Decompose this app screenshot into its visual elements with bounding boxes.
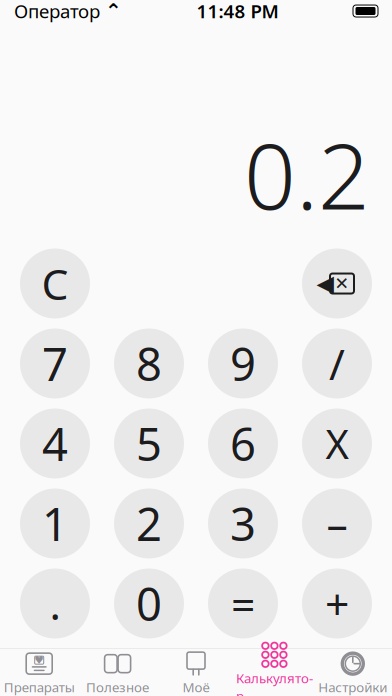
staticText: 0.2 (244, 114, 370, 234)
staticText: 1 (42, 493, 68, 554)
staticText: 0 (136, 573, 162, 634)
button[interactable]: 2 (114, 488, 184, 558)
staticText: 4 (42, 413, 68, 474)
staticText: 6 (230, 413, 256, 474)
button[interactable]: 1 (20, 488, 90, 558)
button[interactable]: = (208, 568, 278, 638)
staticText: Настройки (318, 678, 387, 696)
button[interactable]: ♥ (0, 646, 78, 696)
staticText: ✕ (334, 274, 349, 293)
staticText: X (325, 417, 348, 470)
button[interactable]: X (302, 408, 372, 478)
button[interactable]: – (302, 488, 372, 558)
staticText: 3 (230, 493, 256, 554)
button[interactable]: Настройки (314, 646, 392, 696)
staticText: = (231, 575, 255, 632)
button[interactable]: . (20, 568, 90, 638)
button[interactable]: 9 (208, 328, 278, 398)
staticText: . (49, 575, 60, 632)
button[interactable]: Калькулятор (235, 637, 314, 696)
button[interactable]: Полезное (78, 646, 157, 696)
button[interactable]: / (302, 328, 372, 398)
button[interactable]: 5 (114, 408, 184, 478)
staticText: 5 (136, 413, 162, 474)
staticText: C (41, 255, 68, 312)
button[interactable]: Моё (157, 646, 235, 696)
staticText: 7 (42, 333, 68, 394)
button[interactable]: 4 (20, 408, 90, 478)
staticText: Препараты (4, 678, 75, 696)
staticText: 2 (136, 493, 162, 554)
staticText: Калькулятор (236, 669, 313, 696)
button[interactable]: C (20, 248, 90, 318)
button[interactable]: + (302, 568, 372, 638)
staticText: ⌃ (105, 0, 122, 22)
staticText: – (326, 495, 347, 552)
button[interactable]: 3 (208, 488, 278, 558)
button[interactable]: 7 (20, 328, 90, 398)
staticText: 11:48 PM (196, 0, 278, 23)
staticText: ♥ (34, 654, 44, 666)
staticText: ◀ (316, 271, 333, 296)
button[interactable]: Delete (302, 248, 372, 318)
button[interactable]: 8 (114, 328, 184, 398)
staticText: + (325, 575, 349, 632)
staticText: Полезное (86, 678, 149, 696)
staticText: Оператор (14, 0, 100, 23)
staticText: / (329, 335, 345, 392)
staticText: Моё (182, 678, 209, 696)
button[interactable]: 6 (208, 408, 278, 478)
staticText: 9 (230, 333, 256, 394)
button[interactable]: 0 (114, 568, 184, 638)
staticText: 8 (136, 333, 162, 394)
